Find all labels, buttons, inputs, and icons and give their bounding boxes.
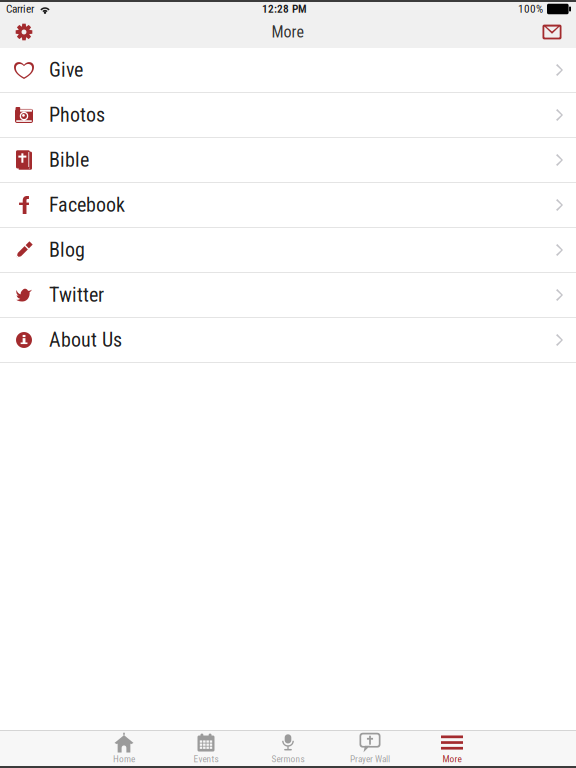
staticText: Photos [49,103,105,127]
staticText: Facebook [49,193,125,217]
staticText: Sermons [271,753,304,764]
staticText: Events [193,753,218,764]
staticText: Twitter [49,283,104,307]
staticText: Prayer Wall [350,753,390,764]
staticText: Carrier [6,2,34,16]
staticText: 12:28 PM [262,2,307,16]
button[interactable]: Settings [0,16,48,48]
staticText: 100% [518,2,543,16]
button[interactable]: Give [0,48,576,93]
button[interactable]: Prayer Wall [329,731,411,766]
staticText: More [442,753,461,764]
button[interactable]: Messages [528,16,576,48]
button[interactable]: More [411,731,493,766]
button[interactable]: Sermons [247,731,329,766]
staticText: Blog [49,238,85,262]
staticText: Home [113,753,135,764]
button[interactable]: About Us [0,318,576,363]
button[interactable]: Facebook [0,183,576,228]
staticText: Bible [49,148,89,172]
staticText: More [271,23,304,41]
staticText: Give [49,58,83,82]
button[interactable]: Home [83,731,165,766]
button[interactable]: Twitter [0,273,576,318]
button[interactable]: Photos [0,93,576,138]
staticText: About Us [49,328,122,352]
button[interactable]: Bible [0,138,576,183]
button[interactable]: Blog [0,228,576,273]
button[interactable]: Events [165,731,247,766]
